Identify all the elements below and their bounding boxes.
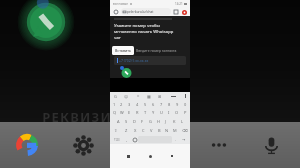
button[interactable]: 5 <box>141 100 149 108</box>
staticText: U <box>160 110 163 115</box>
button[interactable]: X <box>131 126 139 135</box>
staticText: ⌗ <box>137 94 140 98</box>
button[interactable]: Recents <box>168 152 176 160</box>
staticText: G <box>114 94 117 99</box>
staticText: 6 <box>152 102 155 107</box>
button[interactable]: Вставить <box>112 46 134 55</box>
button[interactable]: N <box>163 126 171 135</box>
staticText: Y <box>152 110 155 115</box>
staticText: F <box>141 119 144 124</box>
button[interactable]: H <box>154 117 162 126</box>
staticText: D <box>133 119 136 124</box>
staticText: 4 <box>136 102 139 107</box>
button[interactable]: E <box>125 108 133 117</box>
button[interactable]: F <box>138 117 146 126</box>
button[interactable]: A <box>114 117 122 126</box>
button[interactable]: O <box>173 108 181 117</box>
button[interactable]: ⌗ <box>135 93 141 99</box>
staticText: ⌫ <box>182 128 188 133</box>
button[interactable]: W <box>118 108 125 117</box>
staticText: все новые <box>113 2 128 6</box>
button[interactable]: Y <box>149 108 157 117</box>
staticText: 14:21 <box>175 2 183 6</box>
button[interactable]: 4 <box>133 100 141 108</box>
button[interactable]: Tabs <box>173 9 179 15</box>
button[interactable]: R <box>133 108 141 117</box>
staticText: 3 <box>128 102 131 107</box>
button[interactable]: T <box>141 108 149 117</box>
button[interactable]: Settings <box>68 130 98 160</box>
button[interactable]: M <box>171 126 179 135</box>
staticText: R <box>136 110 139 115</box>
button[interactable]: ⇧ <box>110 126 122 135</box>
button[interactable]: Back <box>124 152 132 160</box>
button[interactable]: I <box>165 108 173 117</box>
button[interactable]: 2 <box>118 100 125 108</box>
button[interactable]: P <box>181 108 189 117</box>
staticText: N <box>165 128 169 133</box>
staticText: L <box>181 119 184 124</box>
button[interactable]: Z <box>122 126 131 135</box>
button[interactable]: G <box>112 93 118 99</box>
button[interactable]: D <box>130 117 138 126</box>
button[interactable] <box>169 93 177 99</box>
button[interactable]: 7 <box>157 100 165 108</box>
button[interactable]: 1 <box>111 100 118 108</box>
staticText: Укажите номер чтобы мгновенно начать Wha… <box>114 23 174 41</box>
button[interactable]: Page info <box>113 9 119 15</box>
button[interactable]: pelerbura.kz/chat <box>121 8 171 15</box>
button[interactable]: K <box>170 117 178 126</box>
staticText: T <box>144 110 147 115</box>
staticText: P <box>184 110 187 115</box>
staticText: ?123 <box>114 138 120 142</box>
staticText: E <box>128 110 131 115</box>
button[interactable]: J <box>162 117 170 126</box>
staticText: ▦ <box>147 94 151 99</box>
button[interactable]: ⊞ <box>157 93 163 99</box>
button[interactable]: V <box>147 126 155 135</box>
button[interactable]: 9 <box>173 100 181 108</box>
button[interactable]: U <box>157 108 165 117</box>
button[interactable]: ⌫ <box>179 126 190 135</box>
button[interactable]: 8 <box>165 100 173 108</box>
button[interactable]: S <box>122 117 130 126</box>
staticText: 0 <box>184 102 187 107</box>
button[interactable]: Emoji <box>131 135 138 144</box>
button[interactable]: +7 (702) 5 xx-xx-xx <box>114 56 186 65</box>
button[interactable]: Home <box>146 152 154 160</box>
button[interactable]: Open WhatsApp chat <box>121 68 132 78</box>
staticText: ⊞ <box>158 94 162 99</box>
button[interactable]: Themes <box>126 130 156 160</box>
button[interactable]: B <box>155 126 163 135</box>
button[interactable]: More options <box>204 130 234 160</box>
button[interactable]: 6 <box>149 100 157 108</box>
button[interactable]: G <box>146 117 154 126</box>
button[interactable]: Menu <box>181 9 187 15</box>
staticText: РЕКВИЗИТЫ <box>42 108 134 126</box>
button[interactable]: Enter <box>179 135 189 144</box>
staticText: I <box>168 110 170 115</box>
staticText: W <box>120 110 124 115</box>
button[interactable]: , <box>123 135 131 144</box>
button[interactable]: L <box>178 117 186 126</box>
button[interactable]: 0 <box>181 100 189 108</box>
button[interactable]: Q <box>111 108 118 117</box>
staticText: Q <box>113 110 117 115</box>
button[interactable]: Google <box>10 128 44 162</box>
button[interactable]: ▦ <box>146 93 152 99</box>
staticText: S <box>125 119 128 124</box>
button[interactable]: C <box>139 126 147 135</box>
button[interactable]: ?123 <box>111 135 123 144</box>
staticText: 7 <box>160 102 163 107</box>
staticText: → <box>182 137 186 142</box>
button[interactable]: 3 <box>125 100 133 108</box>
staticText: J <box>165 119 167 124</box>
staticText: 9 <box>176 102 179 107</box>
button[interactable]: ☺ <box>123 93 129 99</box>
staticText: Z <box>125 128 128 133</box>
button[interactable]: Keyboard settings <box>182 93 188 99</box>
button[interactable]: Voice search <box>256 130 286 160</box>
staticText: pelerbura.kz/chat <box>127 10 154 14</box>
